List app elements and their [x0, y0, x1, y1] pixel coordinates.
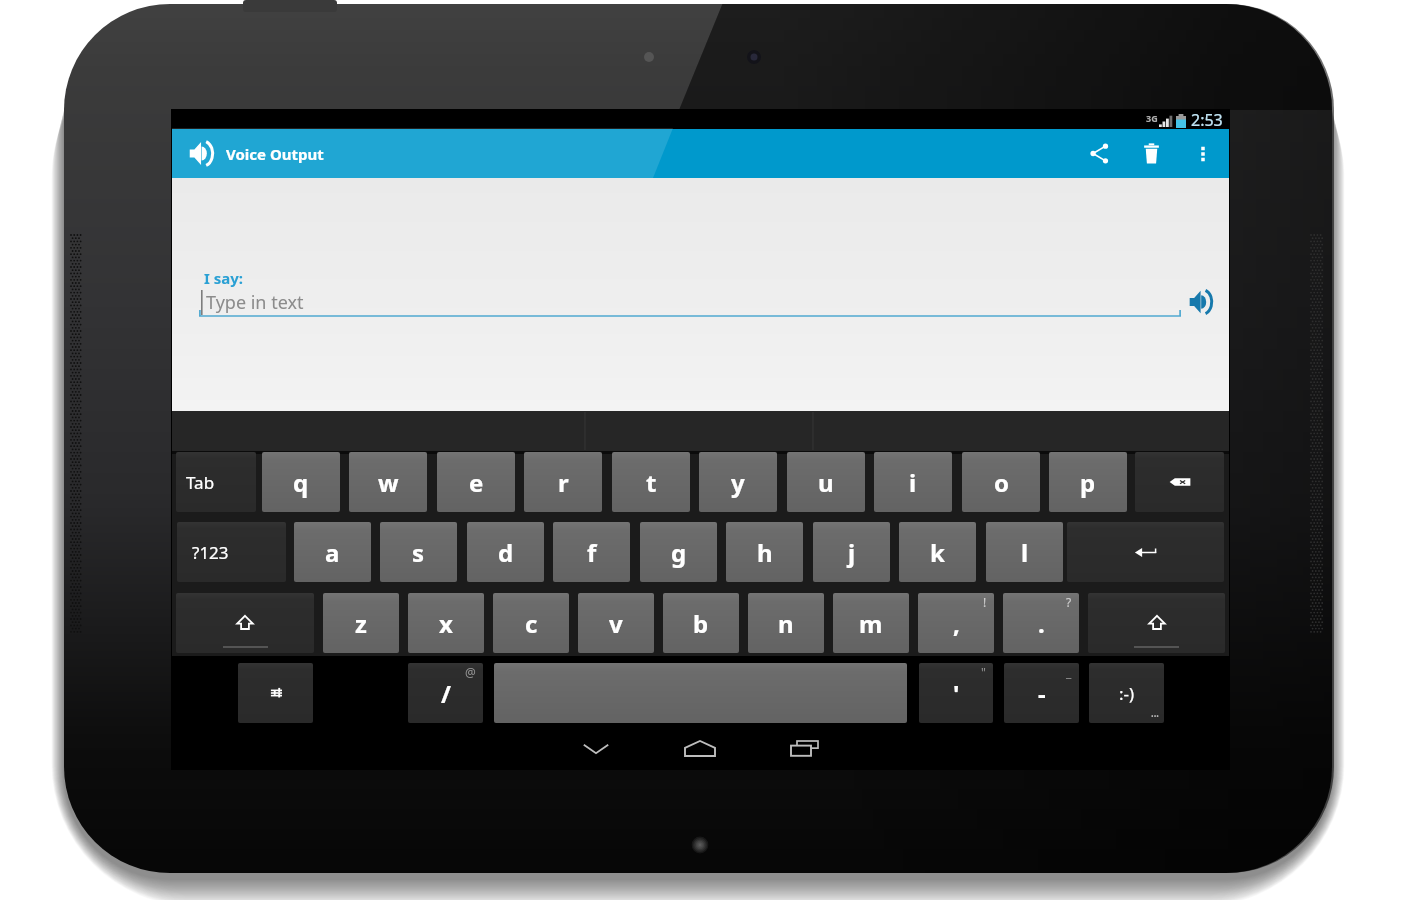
staticText: l [1021, 536, 1029, 569]
button[interactable]: h [726, 522, 803, 582]
button[interactable]: , [918, 593, 994, 653]
button[interactable]: e [437, 452, 515, 512]
button[interactable]: Tab [176, 452, 256, 512]
button[interactable]: l [986, 522, 1063, 582]
staticText: i [909, 466, 917, 499]
button[interactable]: s [380, 522, 457, 582]
button[interactable]: t [612, 452, 690, 512]
button[interactable]: - [1004, 663, 1079, 723]
staticText: 3G [1146, 112, 1158, 124]
staticText: o [994, 466, 1009, 499]
staticText: d [498, 536, 514, 569]
button[interactable]: p [1049, 452, 1127, 512]
staticText: _ [1066, 664, 1072, 680]
staticText: n [778, 607, 794, 640]
button[interactable]: x [408, 593, 484, 653]
button[interactable]: :-) [1089, 663, 1164, 723]
staticText: z [355, 607, 367, 640]
button[interactable]: a [294, 522, 371, 582]
staticText: e [469, 466, 484, 499]
staticText: r [558, 466, 569, 499]
button[interactable]: ' [919, 663, 993, 723]
button[interactable]: w [349, 452, 427, 512]
button[interactable]: shiftL [176, 593, 314, 653]
button[interactable]: m [833, 593, 909, 653]
staticText: 2:53 [1191, 109, 1223, 128]
button[interactable]: Recent apps [752, 730, 856, 769]
button[interactable]: q [262, 452, 340, 512]
button[interactable]: n [748, 593, 824, 653]
button[interactable]: d [467, 522, 544, 582]
staticText: v [609, 607, 623, 640]
button[interactable]: y [699, 452, 777, 512]
staticText: y [731, 466, 745, 499]
button[interactable]: i [874, 452, 952, 512]
button[interactable]: Speak [1185, 285, 1219, 319]
staticText: ' [953, 677, 960, 710]
staticText: b [693, 607, 709, 640]
button[interactable]: shiftR [1088, 593, 1225, 653]
button[interactable]: Voice Output [188, 139, 217, 168]
staticText: c [525, 607, 538, 640]
button[interactable]: f [553, 522, 630, 582]
staticText: j [848, 536, 856, 569]
staticText: f [587, 536, 597, 569]
staticText: ••• [1151, 712, 1159, 722]
button[interactable]: settings [238, 663, 313, 723]
staticText: x [439, 607, 453, 640]
staticText: , [953, 607, 960, 640]
staticText: w [378, 466, 399, 499]
button[interactable]: j [813, 522, 890, 582]
button[interactable]: g [640, 522, 717, 582]
button[interactable]: v [578, 593, 654, 653]
button[interactable]: z [323, 593, 399, 653]
staticText: h [757, 536, 773, 569]
button[interactable]: k [899, 522, 976, 582]
button[interactable]: enter [1067, 522, 1224, 582]
staticText: g [671, 536, 687, 569]
staticText: Type in text [206, 290, 304, 315]
staticText: ?123 [192, 541, 229, 564]
button[interactable]: More options [1177, 129, 1229, 178]
staticText: u [818, 466, 834, 499]
staticText: p [1080, 466, 1096, 499]
button[interactable]: . [1003, 593, 1079, 653]
button[interactable]: r [524, 452, 602, 512]
staticText: / [441, 677, 451, 710]
button[interactable]: o [962, 452, 1040, 512]
staticText: @ [465, 664, 476, 680]
button[interactable]: / [408, 663, 483, 723]
staticText: " [981, 664, 986, 680]
button[interactable]: backspace [1135, 452, 1224, 512]
staticText: m [859, 607, 883, 640]
button[interactable]: b [663, 593, 739, 653]
staticText: s [412, 536, 425, 569]
staticText: Tab [186, 471, 215, 494]
staticText: :-) [1119, 682, 1135, 705]
button[interactable]: c [493, 593, 569, 653]
button[interactable]: Space [494, 663, 907, 723]
button[interactable]: ?123 [177, 522, 286, 582]
staticText: k [930, 536, 945, 569]
staticText: t [646, 466, 657, 499]
button[interactable]: Home [648, 730, 752, 769]
button[interactable]: Share [1073, 129, 1125, 178]
staticText: a [325, 536, 340, 569]
button[interactable]: u [787, 452, 865, 512]
staticText: ! [983, 594, 987, 610]
staticText: Voice Output [226, 144, 324, 164]
staticText: ? [1066, 594, 1072, 610]
staticText: I say: [204, 268, 244, 288]
button[interactable]: Delete [1125, 129, 1177, 178]
button[interactable]: Hide keyboard [544, 730, 648, 769]
staticText: q [293, 466, 309, 499]
staticText: - [1038, 677, 1046, 710]
staticText: . [1038, 607, 1045, 640]
